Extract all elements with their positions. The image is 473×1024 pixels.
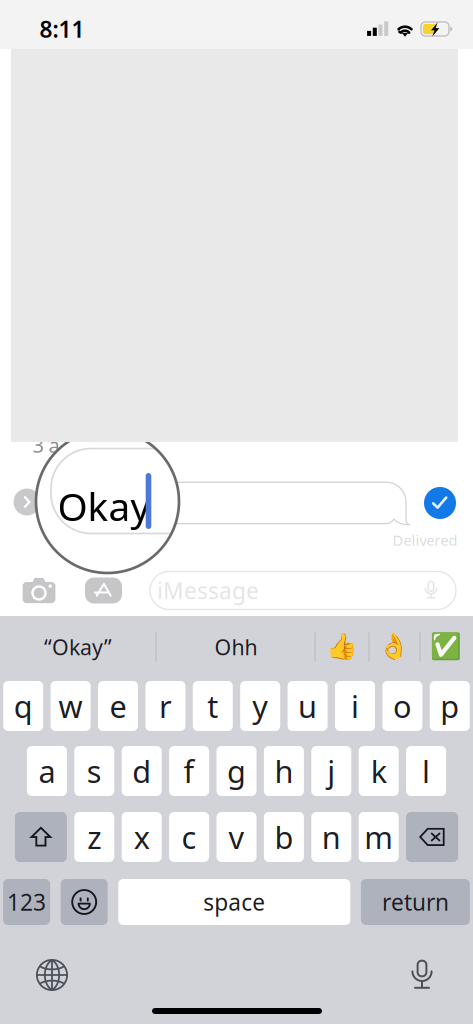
button[interactable]: Ohh bbox=[157, 624, 314, 669]
button[interactable]: z bbox=[74, 812, 114, 862]
button[interactable]: i bbox=[335, 681, 375, 731]
button[interactable]: 123 bbox=[3, 879, 50, 925]
button[interactable]: Camera bbox=[22, 576, 56, 604]
button[interactable]: a bbox=[27, 746, 67, 796]
button[interactable]: e bbox=[98, 681, 138, 731]
button[interactable]: iMessage bbox=[150, 571, 456, 609]
staticText: v bbox=[228, 817, 244, 857]
staticText: j bbox=[327, 751, 335, 791]
staticText: 123 bbox=[7, 887, 46, 917]
staticText: z bbox=[87, 817, 101, 857]
button[interactable]: Shift bbox=[15, 812, 67, 862]
staticText: space bbox=[203, 887, 265, 917]
staticText: l bbox=[422, 751, 430, 791]
staticText: g bbox=[227, 751, 246, 791]
button[interactable]: s bbox=[74, 746, 114, 796]
staticText: w bbox=[59, 686, 83, 726]
button[interactable]: Check mark bbox=[420, 623, 472, 668]
staticText: r bbox=[159, 686, 172, 726]
button[interactable]: w bbox=[51, 681, 91, 731]
button[interactable]: l bbox=[406, 746, 446, 796]
staticText: 👌 bbox=[378, 631, 410, 660]
staticText: k bbox=[371, 751, 387, 791]
staticText: u bbox=[298, 686, 317, 726]
button[interactable]: p bbox=[430, 681, 470, 731]
button[interactable]: j bbox=[311, 746, 351, 796]
button[interactable]: space bbox=[118, 879, 350, 925]
button[interactable]: r bbox=[145, 681, 185, 731]
button[interactable]: b bbox=[264, 812, 304, 862]
staticText: a bbox=[38, 751, 55, 791]
button[interactable]: u bbox=[288, 681, 328, 731]
button[interactable]: Dictation bbox=[400, 953, 444, 997]
button[interactable]: m bbox=[359, 812, 399, 862]
button[interactable]: Sent bbox=[424, 487, 456, 519]
button[interactable]: Next keyboard bbox=[30, 953, 74, 997]
button[interactable]: d bbox=[122, 746, 162, 796]
staticText: b bbox=[274, 817, 293, 857]
staticText: h bbox=[274, 751, 293, 791]
staticText: Delivered bbox=[392, 530, 457, 550]
button[interactable]: x bbox=[122, 812, 162, 862]
button[interactable]: k bbox=[359, 746, 399, 796]
staticText: t bbox=[207, 686, 218, 726]
button[interactable]: h bbox=[264, 746, 304, 796]
button[interactable]: Thumbs up bbox=[316, 623, 368, 668]
staticText: i bbox=[351, 686, 359, 726]
staticText: s bbox=[87, 751, 102, 791]
button[interactable]: Delete bbox=[406, 812, 458, 862]
button[interactable]: g bbox=[216, 746, 256, 796]
staticText: Okay bbox=[57, 480, 150, 532]
button[interactable]: return bbox=[361, 879, 470, 925]
button[interactable]: v bbox=[216, 812, 256, 862]
staticText: e bbox=[109, 686, 126, 726]
staticText: f bbox=[184, 751, 195, 791]
staticText: “Okay” bbox=[44, 633, 112, 661]
button[interactable]: f bbox=[169, 746, 209, 796]
staticText: y bbox=[252, 686, 268, 726]
button[interactable]: OK hand bbox=[369, 623, 419, 668]
staticText: n bbox=[322, 817, 341, 857]
button[interactable]: Emoji bbox=[61, 879, 108, 925]
staticText: 👍 bbox=[326, 631, 358, 660]
staticText: Ohh bbox=[214, 633, 257, 661]
staticText: 8:11 bbox=[39, 14, 84, 44]
staticText: return bbox=[382, 887, 449, 917]
button[interactable]: t bbox=[193, 681, 233, 731]
button[interactable]: “Okay” bbox=[0, 624, 155, 669]
staticText: 3 a bbox=[32, 432, 59, 458]
staticText: m bbox=[364, 817, 393, 857]
staticText: iMessage bbox=[157, 575, 259, 605]
staticText: d bbox=[132, 751, 151, 791]
staticText: p bbox=[440, 686, 459, 726]
button[interactable]: c bbox=[169, 812, 209, 862]
button[interactable]: App Store bbox=[85, 577, 122, 603]
staticText: o bbox=[393, 686, 412, 726]
button[interactable]: q bbox=[3, 681, 43, 731]
staticText: ✅ bbox=[430, 631, 462, 660]
staticText: x bbox=[134, 817, 150, 857]
button[interactable]: o bbox=[382, 681, 422, 731]
button[interactable]: y bbox=[240, 681, 280, 731]
button[interactable]: n bbox=[311, 812, 351, 862]
staticText: c bbox=[182, 817, 197, 857]
staticText: q bbox=[14, 686, 33, 726]
